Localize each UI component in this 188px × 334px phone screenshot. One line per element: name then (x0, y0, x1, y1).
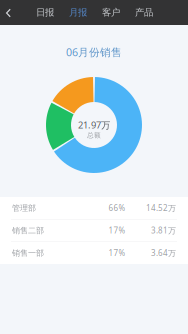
button[interactable]: 销售一部 (0, 242, 188, 264)
staticText: 月报 (69, 7, 87, 18)
staticText: 3.64万 (151, 248, 176, 258)
staticText: 14.52万 (146, 203, 176, 213)
button[interactable]: 销售二部 (0, 219, 188, 241)
staticText: 产品 (135, 7, 153, 18)
staticText: 17% (108, 225, 125, 236)
staticText: 管理部 (12, 203, 36, 213)
staticText: 销售一部 (12, 248, 44, 258)
button[interactable]: Back (0, 0, 18, 25)
staticText: 17% (108, 248, 125, 258)
staticText: 总额 (87, 131, 101, 139)
button[interactable]: 日报 (30, 0, 60, 25)
staticText: 66% (108, 203, 125, 213)
button[interactable]: 月报 (63, 0, 93, 25)
button[interactable]: 管理部 (0, 197, 188, 219)
button[interactable]: 产品 (129, 0, 159, 25)
staticText: 销售二部 (12, 226, 44, 235)
staticText: 06月份销售 (66, 45, 122, 59)
button[interactable]: 客户 (96, 0, 126, 25)
staticText: 3.81万 (151, 225, 176, 236)
staticText: 日报 (36, 7, 54, 18)
staticText: 21.97万 (78, 119, 110, 131)
staticText: 客户 (102, 7, 120, 18)
